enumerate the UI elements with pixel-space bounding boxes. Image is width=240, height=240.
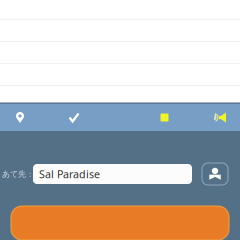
button[interactable]: Stop (129, 104, 200, 131)
button[interactable]: Sal Paradise (33, 164, 192, 184)
button[interactable]: Done (40, 104, 108, 131)
staticText: Sal Paradise (39, 167, 100, 181)
button[interactable]: Message (0, 206, 240, 240)
button[interactable]: Location (0, 104, 40, 131)
button[interactable]: Speaker (200, 104, 240, 131)
button[interactable]: Choose contact (202, 163, 228, 185)
staticText: あて先： (2, 169, 34, 179)
